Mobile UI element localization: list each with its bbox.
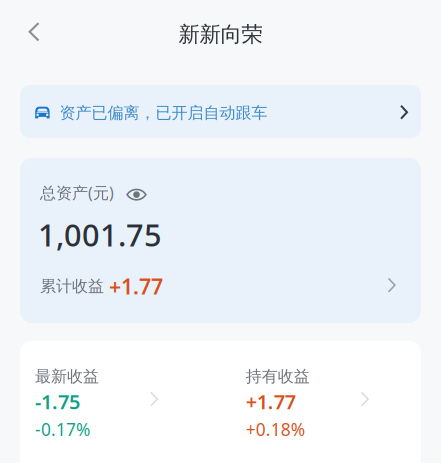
- staticText: 资产已偏离，已开启自动跟车: [60, 103, 268, 123]
- staticText: 累计收益: [40, 276, 104, 296]
- button[interactable]: 最新收益: [35, 367, 246, 455]
- staticText: +1.77: [109, 272, 163, 300]
- staticText: 最新收益: [35, 367, 99, 386]
- staticText: 新新向荣: [178, 21, 262, 48]
- button[interactable]: 持有收益: [246, 367, 421, 455]
- staticText: -0.17%: [35, 418, 90, 441]
- staticText: +0.18%: [246, 418, 305, 441]
- staticText: 持有收益: [246, 367, 310, 386]
- staticText: 总资产(元): [40, 182, 114, 203]
- staticText: 1,001.75: [38, 214, 162, 255]
- staticText: -1.75: [35, 388, 80, 415]
- button[interactable]: Back: [11, 12, 57, 58]
- button[interactable]: 资产已偏离，已开启自动跟车: [20, 85, 421, 138]
- staticText: +1.77: [246, 388, 296, 415]
